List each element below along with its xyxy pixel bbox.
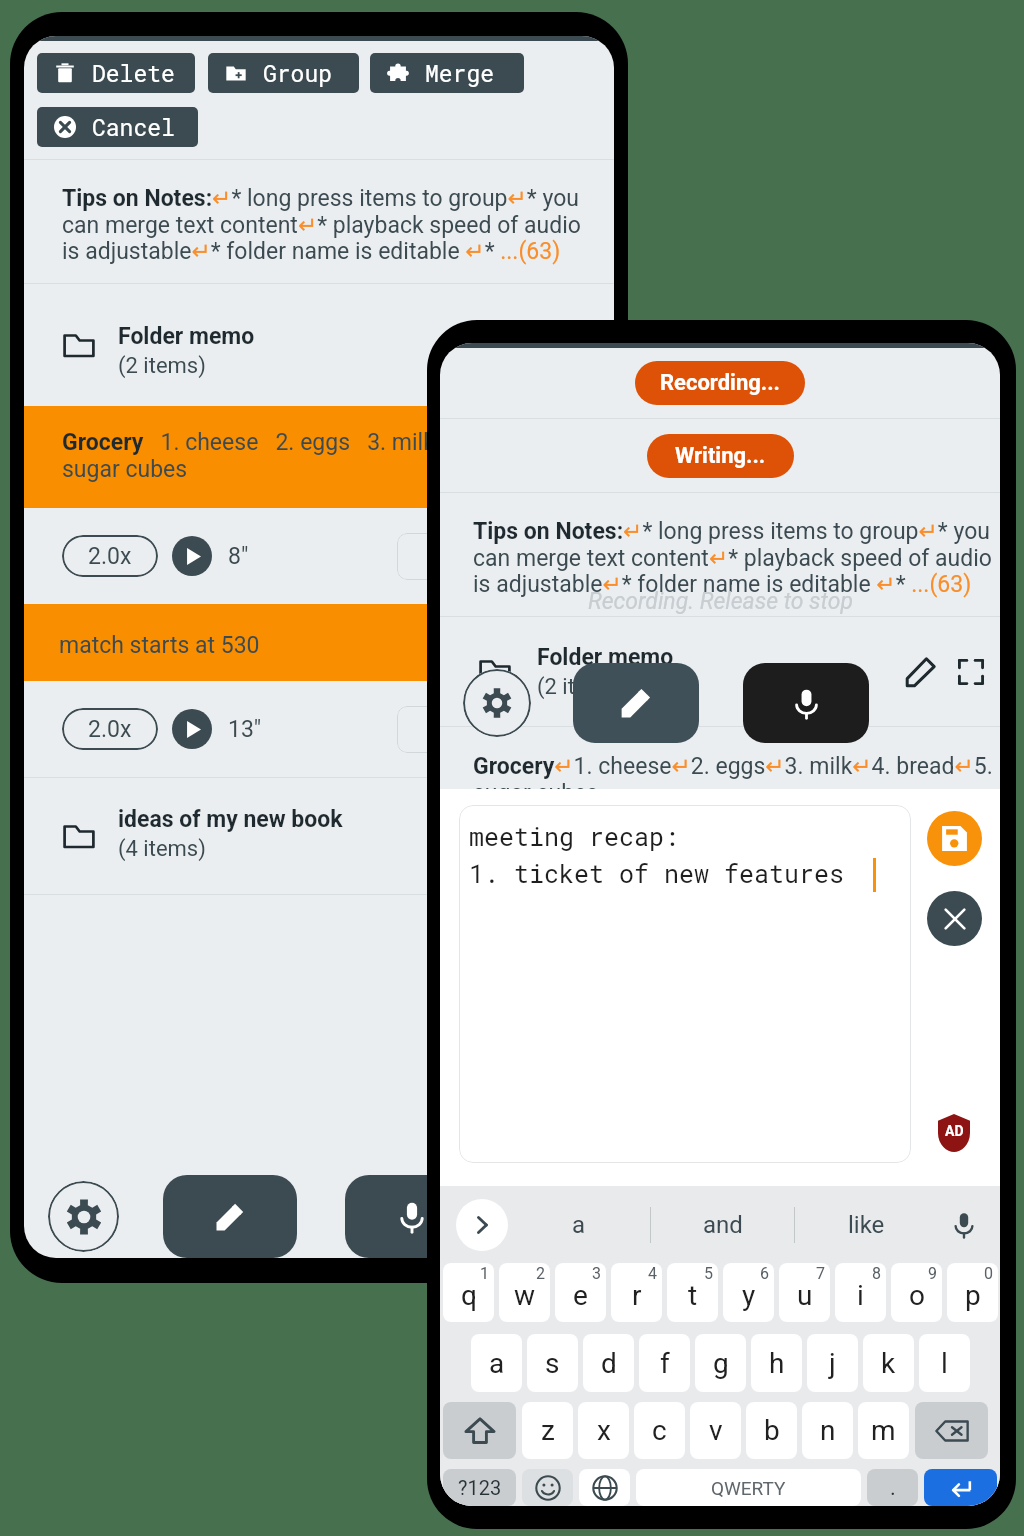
button[interactable]: Group	[208, 53, 359, 93]
button[interactable]: Play	[172, 709, 212, 749]
staticText: Recording. Release to stop	[588, 588, 853, 615]
button[interactable]: Emoji	[522, 1469, 573, 1506]
button[interactable]: Play	[172, 536, 212, 576]
button[interactable]: Record	[345, 1175, 479, 1258]
button[interactable]: QWERTY	[636, 1469, 861, 1506]
button[interactable]: Save	[927, 811, 982, 866]
button[interactable]: Close	[927, 891, 982, 946]
staticText: o	[909, 1279, 925, 1312]
button[interactable]: g	[695, 1334, 746, 1392]
staticText: 9	[928, 1264, 937, 1283]
button[interactable]: Settings	[463, 669, 531, 737]
staticText: k	[881, 1347, 896, 1380]
button[interactable]: Write note	[163, 1175, 297, 1258]
button[interactable]: j	[807, 1334, 858, 1392]
button[interactable]: 4	[611, 1263, 662, 1322]
button[interactable]: 2	[499, 1263, 550, 1322]
staticText: Cancel	[92, 112, 175, 142]
button[interactable]: v	[690, 1402, 741, 1459]
button[interactable]: 2.0x	[24, 681, 614, 777]
staticText: 5	[704, 1264, 713, 1283]
button[interactable]: 3	[555, 1263, 606, 1322]
staticText: x	[597, 1414, 611, 1447]
button[interactable]: Confirm	[397, 706, 481, 753]
button[interactable]: 5	[667, 1263, 718, 1322]
staticText: Tips on Notes:↵* long press items to gro…	[473, 518, 992, 597]
button[interactable]: ideas of my new book	[24, 778, 614, 894]
button[interactable]: Recording...	[635, 361, 805, 405]
button[interactable]: 2.0x	[62, 535, 158, 577]
staticText: a	[489, 1347, 505, 1380]
button[interactable]: 2.0x	[62, 708, 158, 750]
button[interactable]: d	[583, 1334, 634, 1392]
staticText: e	[573, 1279, 588, 1312]
button[interactable]: 2.0x	[24, 508, 614, 604]
button[interactable]: 9	[891, 1263, 942, 1322]
button[interactable]: 1	[443, 1263, 494, 1322]
button[interactable]: match starts at 530	[24, 604, 614, 681]
button[interactable]: Writing...	[647, 434, 794, 478]
button[interactable]: 7	[779, 1263, 830, 1322]
button[interactable]: Voice input	[938, 1199, 990, 1251]
button[interactable]: Tips on Notes:↵* long press items to gro…	[440, 493, 1000, 616]
button[interactable]: More suggestions	[456, 1199, 508, 1251]
staticText: 0	[984, 1264, 993, 1283]
button[interactable]: Record	[743, 663, 869, 743]
button[interactable]: Enter	[924, 1469, 997, 1506]
button[interactable]: Shift	[443, 1402, 516, 1459]
staticText: u	[797, 1279, 813, 1312]
button[interactable]: 6	[723, 1263, 774, 1322]
button[interactable]: Confirm	[397, 533, 481, 580]
staticText: 6	[760, 1264, 769, 1283]
button[interactable]: Tips on Notes:↵* long press items to gro…	[24, 160, 614, 283]
button[interactable]: z	[522, 1402, 573, 1459]
button[interactable]: Grocery↵1. cheese↵2. eggs↵3. milk↵4. bre…	[440, 727, 1000, 789]
button[interactable]: .	[867, 1469, 918, 1506]
button[interactable]: Backspace	[915, 1402, 988, 1459]
button[interactable]: c	[634, 1402, 685, 1459]
staticText: 13"	[228, 716, 262, 743]
staticText: meeting recap: 1. ticket of new features	[469, 820, 860, 889]
staticText: j	[829, 1347, 836, 1380]
button[interactable]: h	[751, 1334, 802, 1392]
staticText: (2 items)	[537, 674, 625, 700]
staticText: z	[541, 1414, 555, 1447]
button[interactable]: Cancel	[37, 107, 198, 147]
staticText: b	[764, 1414, 780, 1447]
staticText: and	[703, 1211, 743, 1239]
button[interactable]: Delete	[37, 53, 195, 93]
staticText: Recording...	[660, 370, 780, 396]
button[interactable]: meeting recap: 1. ticket of new features	[459, 805, 911, 1163]
staticText: (2 items)	[118, 353, 206, 379]
staticText: a	[572, 1211, 586, 1239]
staticText: Tips on Notes:↵* long press items to gro…	[62, 185, 581, 264]
button[interactable]: Edit	[898, 649, 944, 695]
button[interactable]: n	[802, 1402, 853, 1459]
button[interactable]: ?123	[443, 1469, 516, 1506]
staticText: y	[742, 1279, 756, 1312]
staticText: h	[769, 1347, 785, 1380]
staticText: Group	[263, 58, 333, 88]
button[interactable]: 0	[947, 1263, 998, 1322]
button[interactable]: a	[471, 1334, 522, 1392]
button[interactable]: Settings	[48, 1181, 119, 1252]
button[interactable]: 8	[835, 1263, 886, 1322]
button[interactable]: Write	[573, 663, 699, 743]
button[interactable]: x	[578, 1402, 629, 1459]
button[interactable]: Expand	[948, 649, 994, 695]
button[interactable]: f	[639, 1334, 690, 1392]
staticText: match starts at 530	[59, 632, 260, 659]
button[interactable]: s	[527, 1334, 578, 1392]
staticText: Grocery↵1. cheese↵2. eggs↵3. milk↵4. bre…	[473, 753, 993, 789]
button[interactable]: Language	[579, 1469, 630, 1506]
staticText: 4	[648, 1264, 657, 1283]
button[interactable]: k	[863, 1334, 914, 1392]
button[interactable]: Folder memo	[24, 284, 614, 406]
button[interactable]: l	[919, 1334, 970, 1392]
button[interactable]: Folder memo	[440, 617, 1000, 726]
button[interactable]: b	[746, 1402, 797, 1459]
button[interactable]: Merge	[370, 53, 524, 93]
staticText: Writing...	[675, 443, 766, 469]
button[interactable]: Grocery 1. cheese 2. eggs 3. milk 4. bre…	[24, 406, 614, 508]
button[interactable]: m	[858, 1402, 909, 1459]
